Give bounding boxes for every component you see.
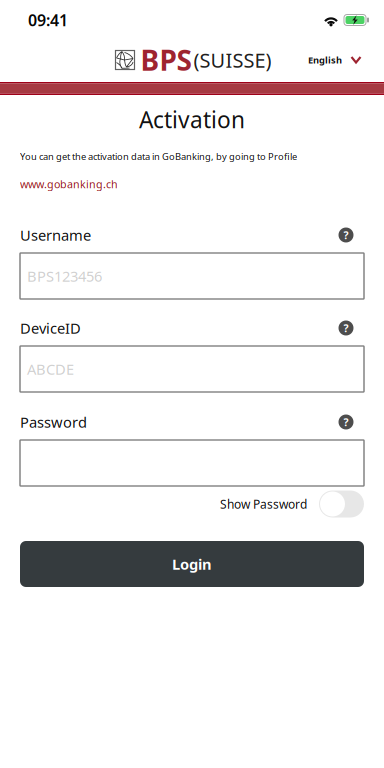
staticText: ?	[343, 321, 348, 335]
button[interactable]: BPS123456	[20, 253, 364, 299]
button[interactable]: Show Password	[20, 487, 364, 521]
staticText: English	[308, 54, 342, 66]
staticText: DeviceID	[20, 318, 81, 338]
staticText: Username	[20, 225, 91, 245]
button[interactable]: Help about this field	[333, 223, 364, 247]
staticText: ?	[343, 228, 348, 242]
staticText: Show Password	[220, 496, 307, 512]
button[interactable]: Help about this field	[333, 316, 364, 340]
staticText: Activation	[139, 104, 245, 134]
staticText: ABCDE	[27, 359, 74, 379]
button[interactable]: Help about this field	[333, 410, 364, 434]
staticText: www.gobanking.ch	[20, 177, 118, 191]
staticText: BPS	[140, 41, 191, 79]
staticText: Login	[172, 554, 212, 574]
staticText: (SUISSE)	[193, 47, 271, 73]
button[interactable]: Login	[20, 541, 364, 587]
button[interactable]: www.gobanking.ch	[20, 168, 118, 200]
staticText: You can get the activation data in GoBan…	[20, 150, 297, 163]
button[interactable]	[20, 440, 364, 486]
staticText: ?	[343, 415, 348, 429]
staticText: 09:41	[28, 9, 68, 31]
button[interactable]: English	[308, 38, 384, 82]
staticText: Password	[20, 412, 87, 432]
button[interactable]: ABCDE	[20, 346, 364, 392]
staticText: BPS123456	[27, 266, 102, 286]
